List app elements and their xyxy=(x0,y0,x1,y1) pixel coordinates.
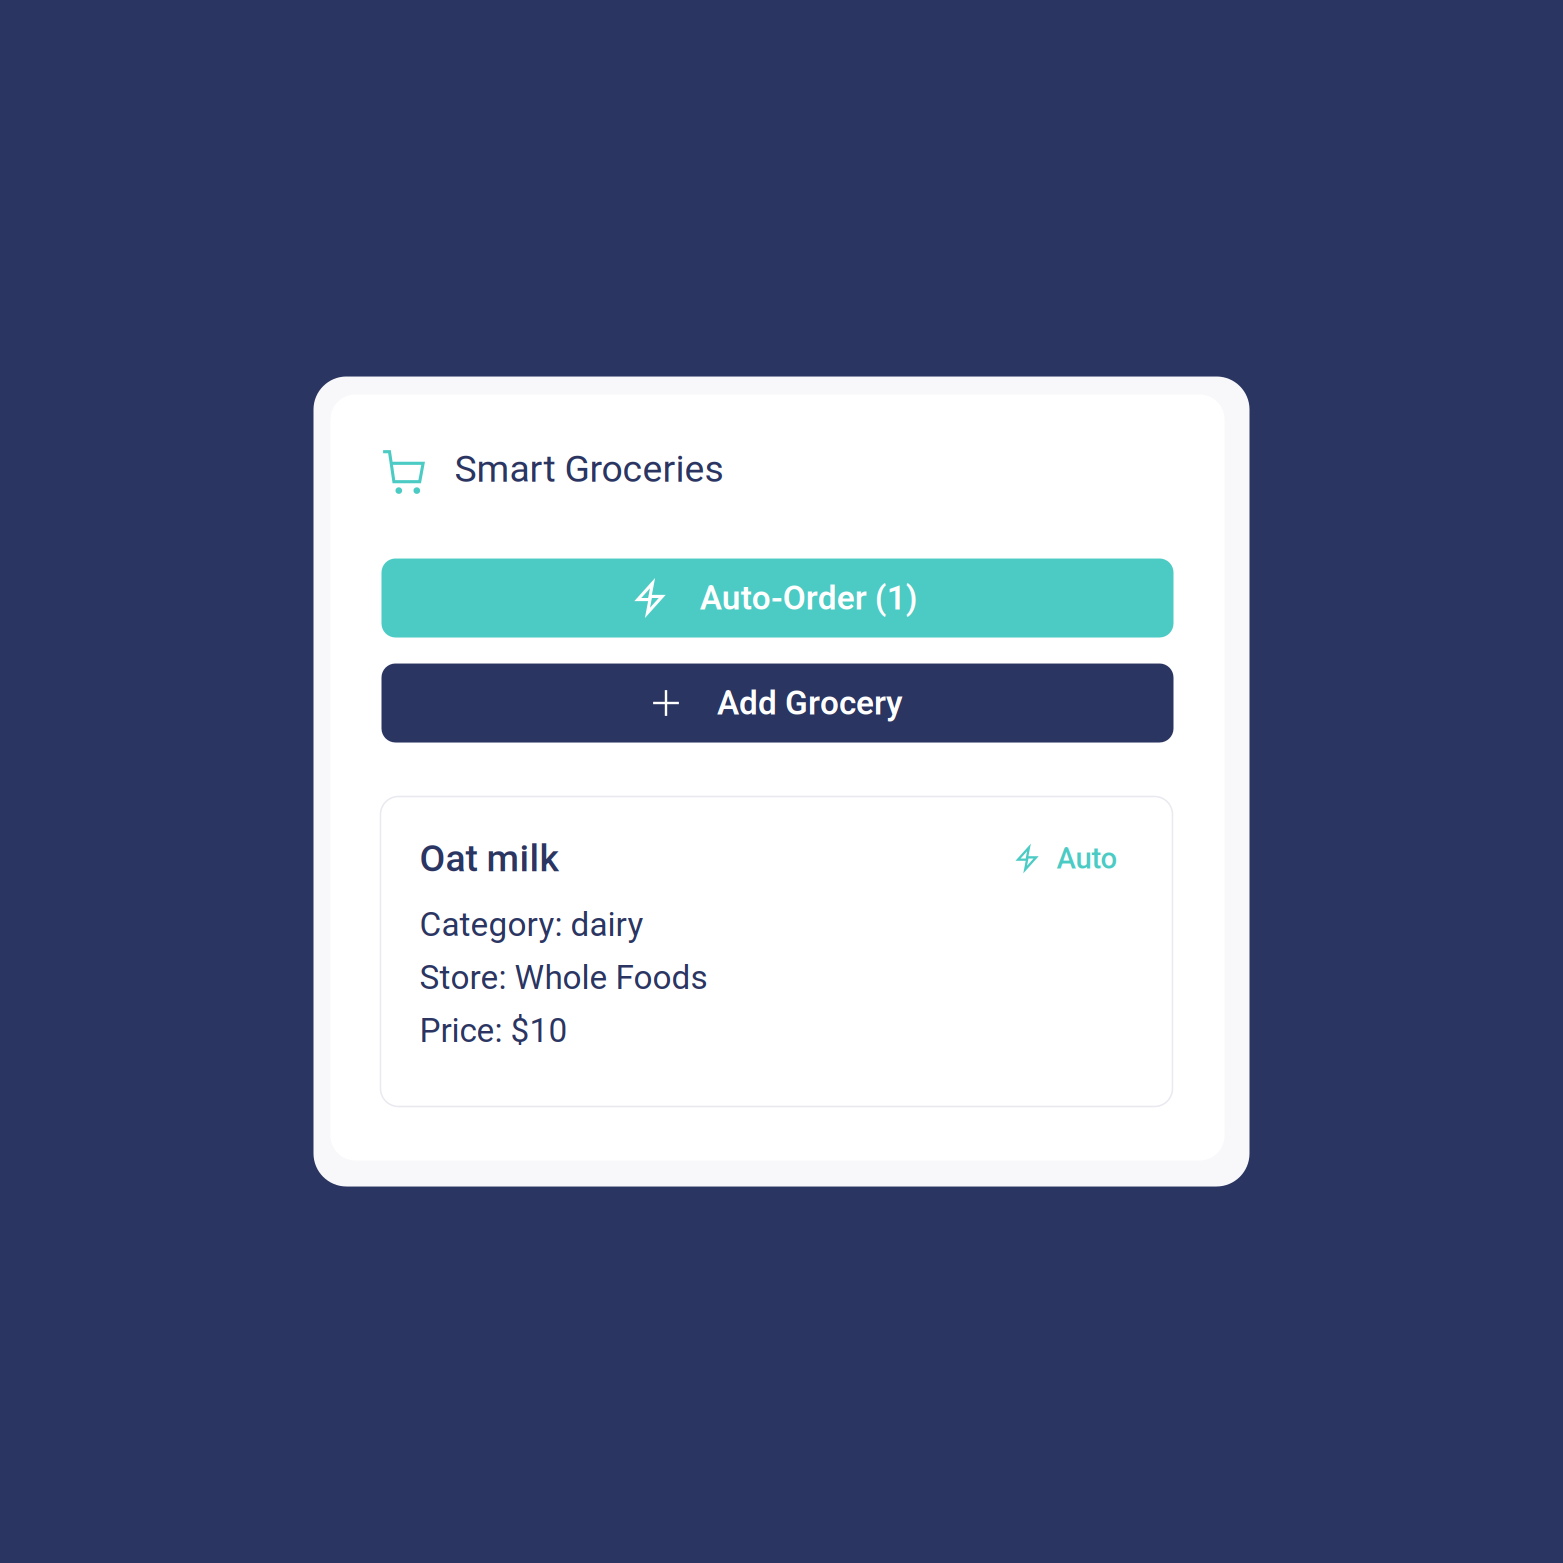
button[interactable]: Auto-Order (1) xyxy=(381,558,1173,637)
staticText: Auto xyxy=(1056,841,1117,876)
staticText: Category: dairy xyxy=(419,905,643,944)
staticText: Add Grocery xyxy=(717,683,903,723)
staticText: Oat milk xyxy=(419,837,558,880)
button[interactable]: Add Grocery xyxy=(381,663,1173,742)
staticText: Smart Groceries xyxy=(454,447,723,491)
staticText: Price: $10 xyxy=(419,1011,567,1050)
staticText: Auto-Order (1) xyxy=(700,578,918,618)
button[interactable]: Oat milk xyxy=(380,796,1172,1106)
staticText: Store: Whole Foods xyxy=(419,958,707,997)
